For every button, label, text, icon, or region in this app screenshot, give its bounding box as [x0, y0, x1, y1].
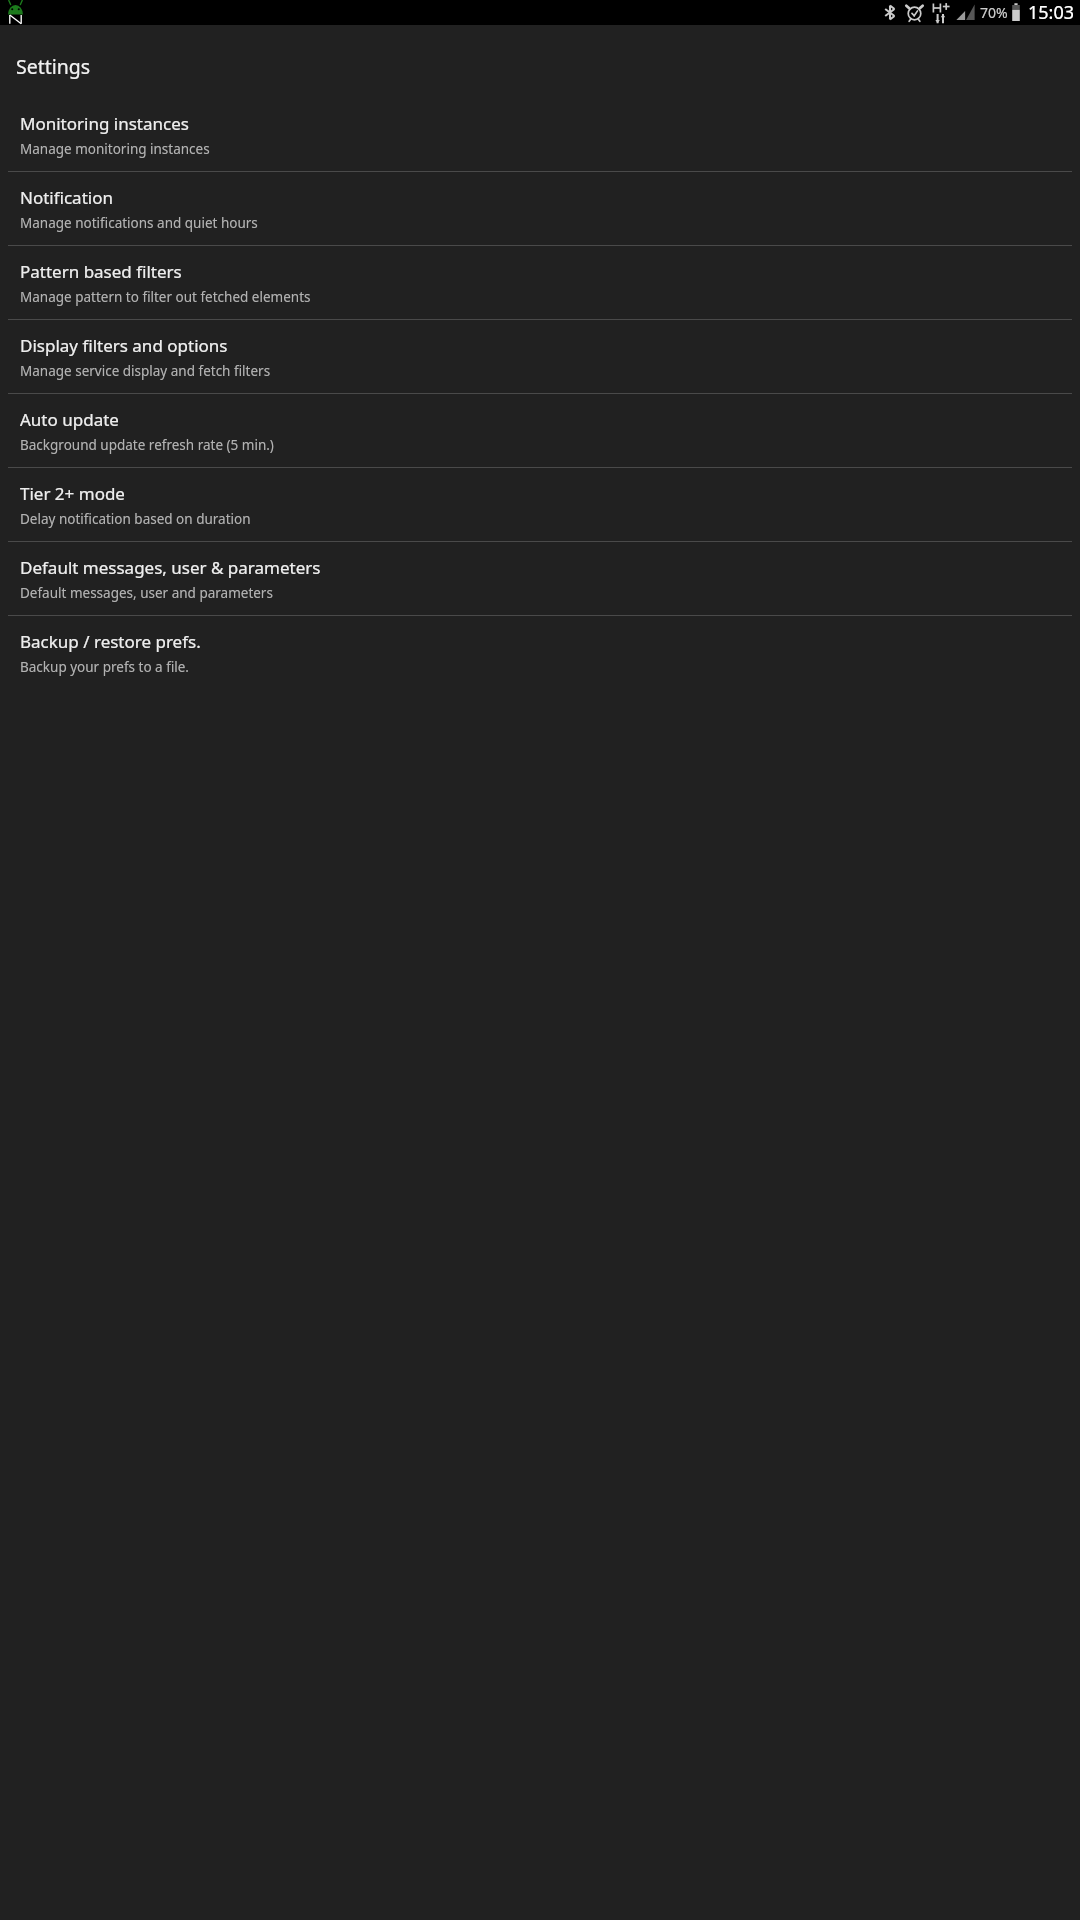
- staticText: Manage pattern to filter out fetched ele…: [20, 288, 311, 306]
- staticText: Backup your prefs to a file.: [20, 658, 189, 676]
- button[interactable]: Monitoring instances: [0, 98, 1080, 171]
- staticText: Default messages, user & parameters: [20, 556, 321, 579]
- button[interactable]: Default messages, user & parameters: [0, 542, 1080, 615]
- staticText: Manage service display and fetch filters: [20, 362, 271, 380]
- staticText: Auto update: [20, 408, 119, 431]
- staticText: Delay notification based on duration: [20, 510, 251, 528]
- staticText: Manage monitoring instances: [20, 140, 210, 158]
- staticText: 15:03: [1028, 0, 1075, 25]
- staticText: Background update refresh rate (5 min.): [20, 436, 274, 454]
- staticText: Settings: [16, 53, 91, 80]
- staticText: Manage notifications and quiet hours: [20, 214, 258, 232]
- staticText: Notification: [20, 186, 113, 209]
- button[interactable]: Notification: [0, 172, 1080, 245]
- staticText: Backup / restore prefs.: [20, 630, 201, 653]
- staticText: 70%: [980, 3, 1008, 22]
- staticText: Pattern based filters: [20, 260, 182, 283]
- staticText: Monitoring instances: [20, 112, 189, 135]
- staticText: Display filters and options: [20, 334, 228, 357]
- button[interactable]: Backup / restore prefs.: [0, 616, 1080, 689]
- staticText: Tier 2+ mode: [20, 482, 125, 505]
- other: Android N: [6, 0, 25, 25]
- button[interactable]: Auto update: [0, 394, 1080, 467]
- button[interactable]: Pattern based filters: [0, 246, 1080, 319]
- staticText: Default messages, user and parameters: [20, 584, 273, 602]
- button[interactable]: Display filters and options: [0, 320, 1080, 393]
- button[interactable]: Tier 2+ mode: [0, 468, 1080, 541]
